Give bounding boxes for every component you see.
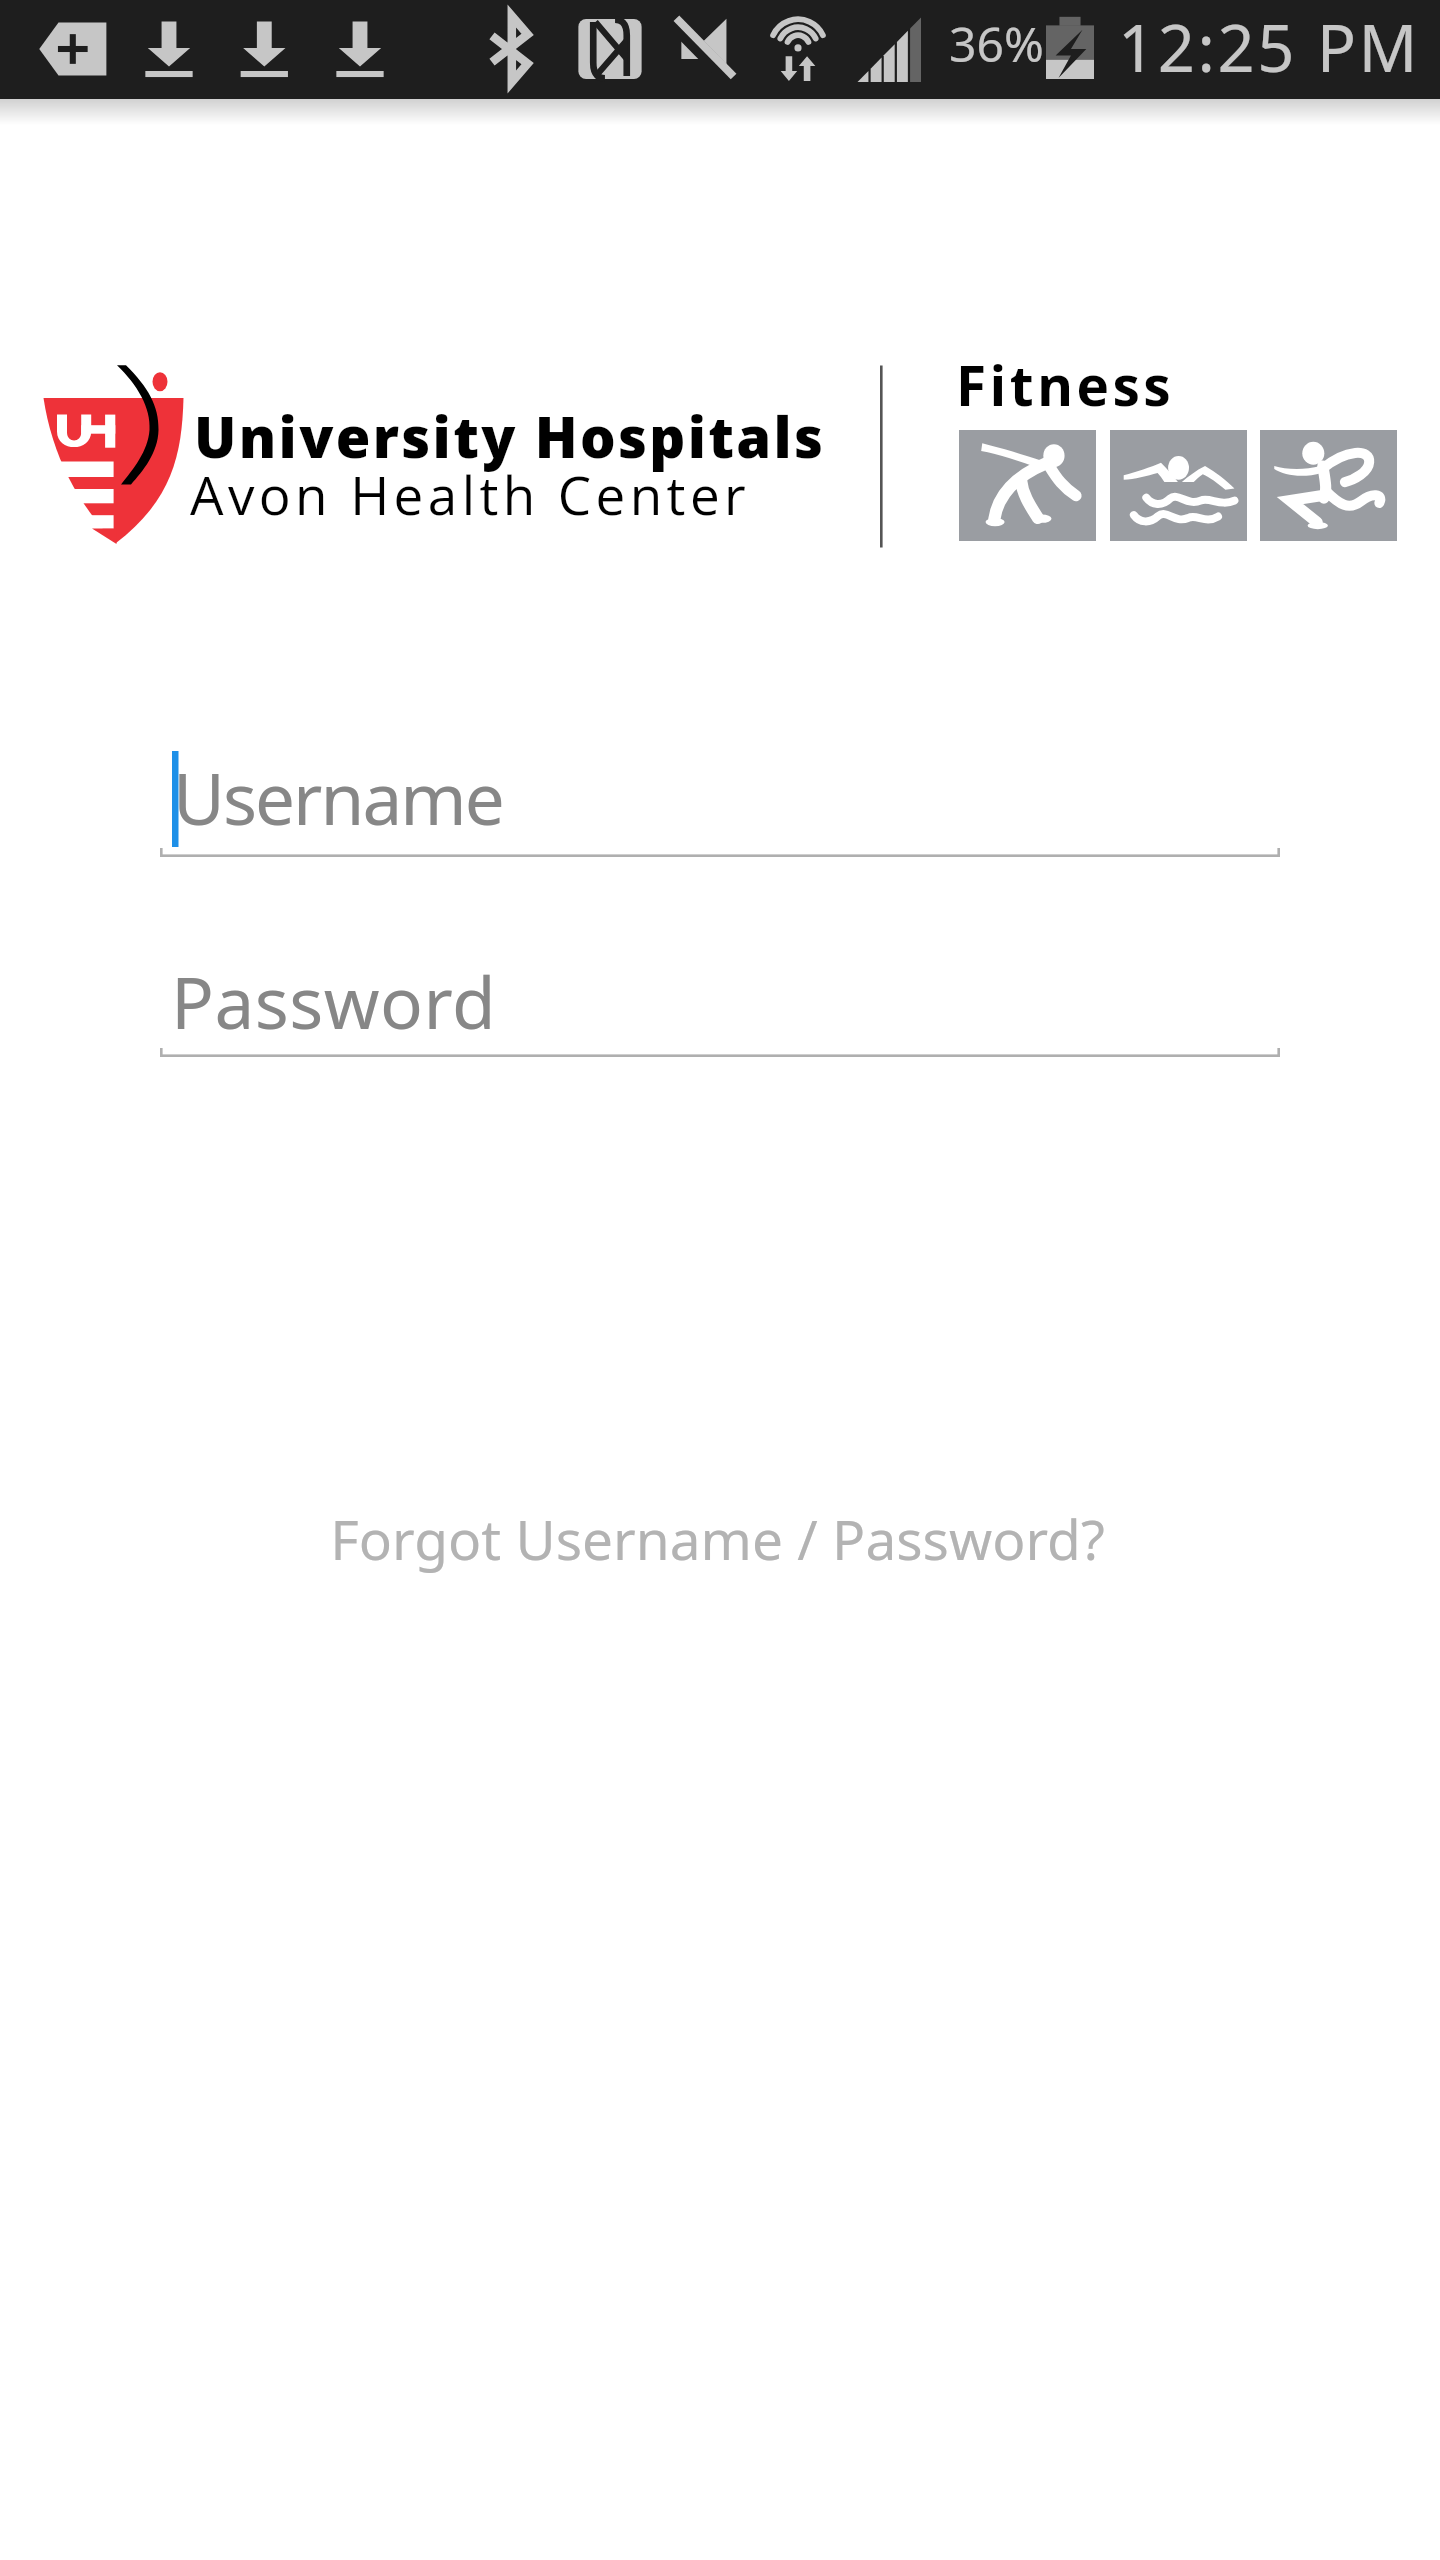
staticText: Fitness [956,347,1174,422]
staticText: Forgot Username / Password? [330,1501,1105,1576]
button[interactable]: Forgot Username / Password? [0,1492,1440,1584]
staticText: Username [173,749,503,846]
staticText: Avon Health Center [190,458,751,530]
button[interactable]: Username [160,730,1280,857]
staticText: Password [171,953,497,1050]
staticText: 12:25 PM [1118,3,1421,92]
staticText: University Hospitals [194,398,826,474]
staticText: 36% [949,11,1044,76]
button[interactable]: Password [160,929,1280,1057]
